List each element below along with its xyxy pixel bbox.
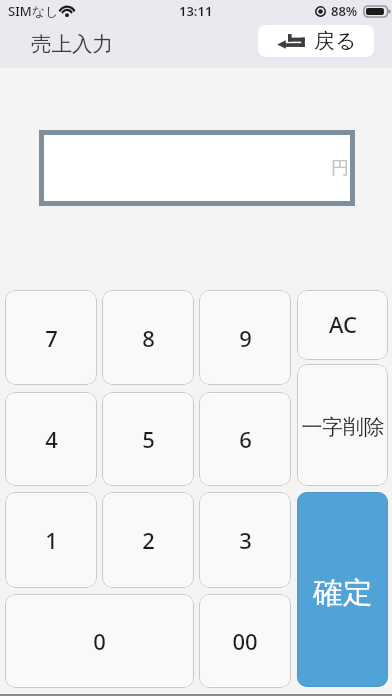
button[interactable]: 戻る (258, 25, 374, 57)
staticText: 6 (239, 424, 252, 454)
staticText: 確定 (313, 574, 373, 612)
staticText: SIMなし (8, 2, 59, 20)
button[interactable]: 1 (5, 492, 97, 588)
staticText: 00 (232, 626, 258, 656)
button[interactable]: 6 (199, 392, 291, 486)
staticText: 1 (45, 525, 58, 555)
button[interactable]: 8 (102, 290, 194, 385)
staticText: 9 (239, 323, 252, 353)
staticText: 円 (331, 157, 349, 180)
staticText: 13:11 (179, 2, 213, 20)
button[interactable]: 7 (5, 290, 97, 385)
staticText: 8 (142, 323, 155, 353)
staticText: 0 (93, 626, 106, 656)
button[interactable]: AC (297, 290, 388, 360)
button[interactable]: 一字削除 (297, 364, 388, 486)
button[interactable]: 5 (102, 392, 194, 486)
button[interactable]: 2 (102, 492, 194, 588)
button[interactable]: 4 (5, 392, 97, 486)
button[interactable]: 円 (39, 130, 355, 206)
button[interactable]: 00 (199, 594, 291, 688)
staticText: 2 (142, 525, 155, 555)
staticText: 一字削除 (301, 414, 385, 440)
staticText: 4 (45, 424, 58, 454)
staticText: 5 (142, 424, 155, 454)
staticText: 3 (239, 525, 252, 555)
staticText: 戻る (314, 28, 357, 54)
staticText: 7 (45, 323, 58, 353)
button[interactable]: 0 (5, 594, 194, 688)
button[interactable]: 3 (199, 492, 291, 588)
button[interactable]: 確定 (297, 492, 388, 687)
staticText: 88% (331, 2, 358, 20)
staticText: 売上入力 (31, 31, 113, 57)
button[interactable]: 9 (199, 290, 291, 385)
staticText: AC (329, 309, 357, 339)
